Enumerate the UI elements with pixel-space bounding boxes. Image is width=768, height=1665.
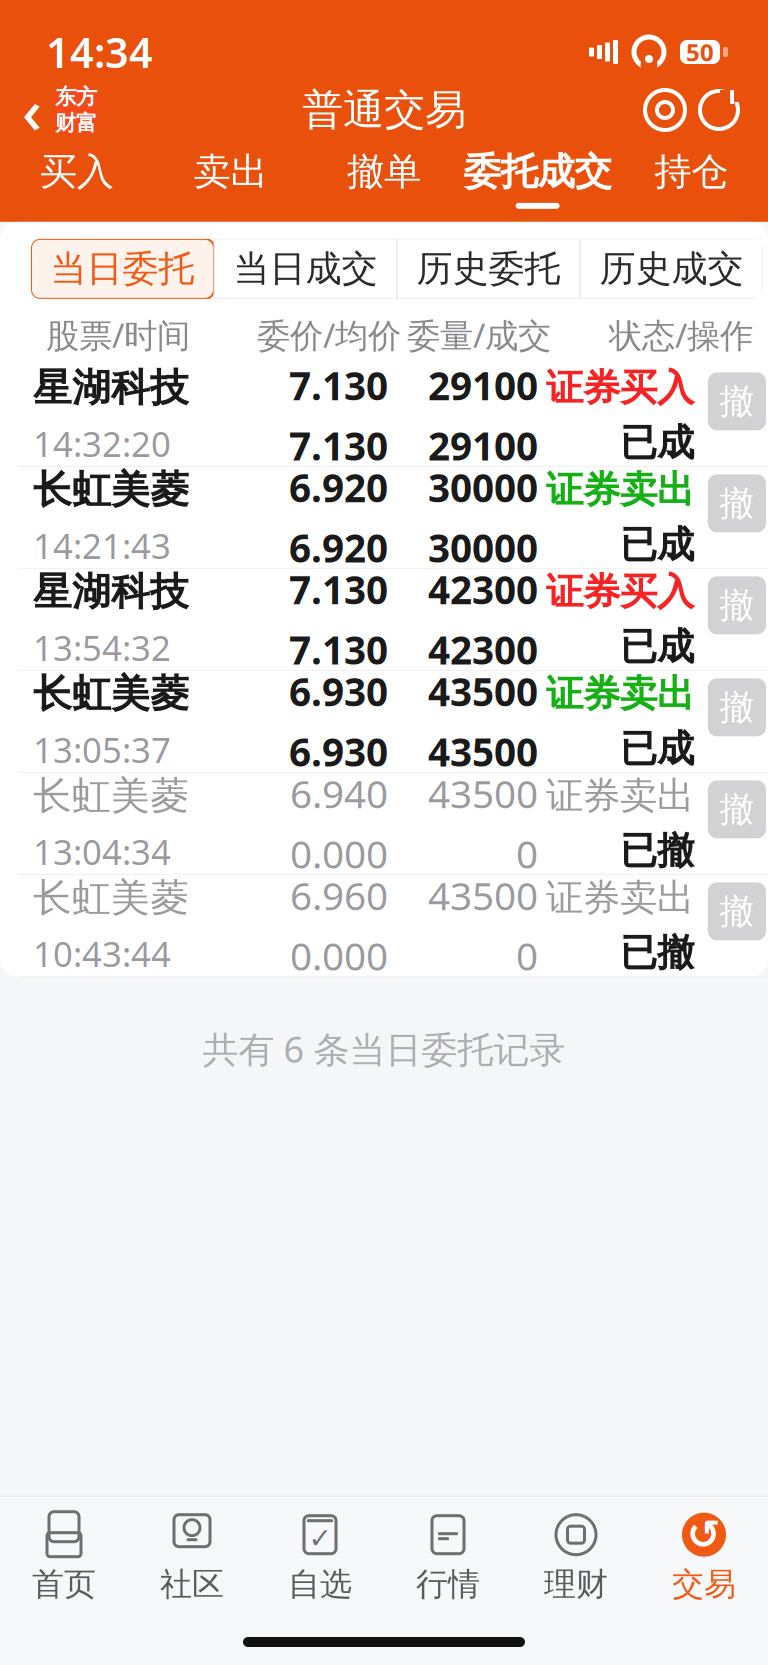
staticText: 30000 — [428, 461, 538, 513]
staticText: 14:21:43 — [33, 523, 171, 569]
staticText: 43500 — [428, 726, 538, 777]
staticText: 0 — [516, 930, 538, 981]
button[interactable]: 设置 — [638, 83, 692, 137]
staticText: 已成 — [620, 420, 694, 466]
button[interactable]: 撤单 — [708, 576, 766, 634]
staticText: 13:54:32 — [33, 625, 171, 671]
staticText: 7.130 — [289, 624, 388, 675]
staticText: 委托成交 — [464, 149, 612, 195]
staticText: 星湖科技 — [33, 364, 189, 412]
button[interactable]: 返回 — [0, 63, 98, 157]
button[interactable]: 卖出 — [154, 146, 307, 212]
button[interactable]: 历史成交 — [580, 239, 763, 299]
staticText: 6.930 — [289, 726, 388, 777]
staticText: 13:05:37 — [33, 727, 171, 773]
staticText: 持仓 — [654, 149, 728, 195]
staticText: 星湖科技 — [33, 568, 189, 616]
button[interactable]: 撤单 — [708, 882, 766, 940]
staticText: 首页 — [32, 1565, 96, 1604]
button[interactable]: 持仓 — [614, 146, 768, 212]
staticText: 43500 — [428, 767, 538, 819]
staticText: 委价/均价 — [257, 313, 401, 357]
staticText: 29100 — [428, 420, 538, 471]
staticText: 已成 — [620, 726, 694, 772]
staticText: 50 — [686, 36, 714, 68]
staticText: 14:34 — [46, 25, 153, 79]
staticText: 证券卖出 — [546, 671, 694, 717]
staticText: 状态/操作 — [609, 313, 753, 357]
staticText: 股票/时间 — [46, 313, 190, 357]
staticText: 社区 — [160, 1565, 224, 1604]
button[interactable]: 买入 — [0, 146, 154, 212]
staticText: ↺ — [687, 1512, 721, 1557]
staticText: 撤 — [719, 686, 754, 729]
staticText: ‹ — [22, 69, 42, 151]
staticText: 历史成交 — [599, 247, 743, 291]
staticText: 43500 — [428, 665, 538, 717]
staticText: 14:32:20 — [33, 421, 171, 467]
staticText: 交易 — [672, 1565, 736, 1604]
button[interactable]: 当日成交 — [214, 239, 397, 299]
staticText: 撤单 — [347, 149, 421, 195]
button[interactable]: 当日委托 — [31, 239, 214, 299]
staticText: 0 — [516, 828, 538, 879]
staticText: 7.130 — [289, 420, 388, 471]
staticText: 长虹美菱 — [33, 874, 189, 922]
button[interactable]: 撤单 — [708, 780, 766, 838]
staticText: 7.130 — [289, 359, 388, 411]
button[interactable]: 历史委托 — [397, 239, 580, 299]
staticText: 当日委托 — [50, 247, 194, 291]
staticText: 共有 6 条当日委托记录 — [202, 1025, 565, 1073]
staticText: 已撤 — [620, 930, 694, 976]
staticText: 买入 — [40, 149, 114, 195]
staticText: 理财 — [544, 1565, 608, 1604]
staticText: 东方 — [55, 84, 97, 110]
staticText: 证券买入 — [546, 569, 694, 615]
button[interactable]: 理财 — [512, 1509, 640, 1607]
button[interactable]: 撤单 — [708, 474, 766, 532]
staticText: 证券买入 — [546, 365, 694, 411]
staticText: 证券卖出 — [546, 773, 694, 819]
staticText: 6.960 — [290, 869, 388, 921]
staticText: 29100 — [428, 359, 538, 411]
staticText: 6.920 — [289, 522, 388, 573]
staticText: 已撤 — [620, 828, 694, 874]
staticText: 历史委托 — [416, 247, 560, 291]
staticText: 卖出 — [193, 149, 267, 195]
staticText: 0.000 — [290, 828, 388, 879]
staticText: 30000 — [428, 522, 538, 573]
button[interactable]: ✓ — [256, 1509, 384, 1607]
button[interactable]: 首页 — [0, 1509, 128, 1607]
staticText: 长虹美菱 — [33, 466, 189, 514]
staticText: 10:43:44 — [33, 931, 171, 977]
staticText: 自选 — [288, 1565, 352, 1604]
staticText: 证券卖出 — [546, 875, 694, 921]
button[interactable]: 社区 — [128, 1509, 256, 1607]
button[interactable]: 撤单 — [307, 146, 461, 212]
button[interactable]: 撤单 — [708, 678, 766, 736]
staticText: 42300 — [428, 563, 538, 615]
staticText: ✓ — [308, 1522, 331, 1554]
staticText: 当日成交 — [233, 247, 377, 291]
button[interactable]: 撤单 — [708, 372, 766, 430]
staticText: 普通交易 — [302, 85, 466, 135]
staticText: 委量/成交 — [407, 313, 551, 357]
staticText: 6.920 — [289, 461, 388, 513]
button[interactable]: ↺ — [640, 1509, 768, 1607]
button[interactable]: 行情 — [384, 1509, 512, 1607]
button[interactable]: 刷新 — [692, 83, 746, 137]
staticText: 7.130 — [289, 563, 388, 615]
staticText: 撤 — [719, 584, 754, 627]
staticText: 撤 — [719, 482, 754, 525]
staticText: 0.000 — [290, 930, 388, 981]
staticText: 6.940 — [290, 767, 388, 819]
staticText: 撤 — [719, 788, 754, 831]
staticText: 撤 — [719, 380, 754, 423]
staticText: 撤 — [719, 890, 754, 933]
staticText: 财富 — [55, 110, 97, 136]
staticText: 长虹美菱 — [33, 772, 189, 820]
staticText: 43500 — [428, 869, 538, 921]
staticText: 13:04:34 — [33, 829, 171, 875]
button[interactable]: 委托成交 — [461, 146, 614, 212]
staticText: 42300 — [428, 624, 538, 675]
